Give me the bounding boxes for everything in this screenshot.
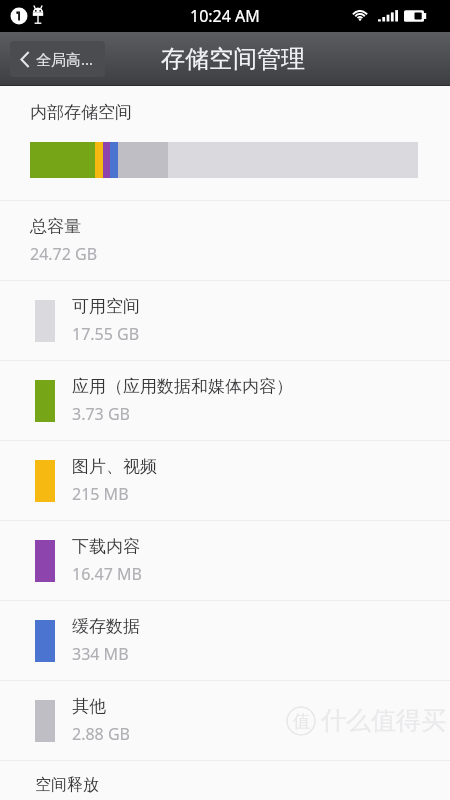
button[interactable]: 可用空间 bbox=[0, 281, 450, 360]
staticText: 图片、视频 bbox=[72, 456, 157, 477]
staticText: 334 MB bbox=[72, 643, 129, 665]
staticText: 应用（应用数据和媒体内容） bbox=[72, 376, 293, 397]
staticText: 10:24 AM bbox=[190, 5, 260, 27]
button[interactable]: 图片、视频 bbox=[0, 441, 450, 520]
staticText: 存储空间管理 bbox=[161, 44, 305, 74]
staticText: 可用空间 bbox=[72, 296, 140, 317]
staticText: 16.47 MB bbox=[72, 563, 142, 585]
staticText: 17.55 GB bbox=[72, 323, 140, 345]
staticText: 值 bbox=[293, 711, 310, 732]
button[interactable]: 其他 bbox=[0, 681, 450, 760]
button[interactable]: 下载内容 bbox=[0, 521, 450, 600]
button[interactable]: 应用（应用数据和媒体内容） bbox=[0, 361, 450, 440]
button[interactable]: 全局高... bbox=[10, 41, 105, 77]
staticText: 空间释放 bbox=[35, 775, 99, 795]
button[interactable]: 空间释放 bbox=[0, 761, 450, 800]
staticText: 3.73 GB bbox=[72, 403, 130, 425]
staticText: 其他 bbox=[72, 696, 106, 717]
staticText: 2.88 GB bbox=[72, 723, 130, 745]
staticText: 内部存储空间 bbox=[30, 102, 132, 123]
staticText: 215 MB bbox=[72, 483, 129, 505]
staticText: 什么值得买 bbox=[321, 705, 446, 736]
staticText: 下载内容 bbox=[72, 536, 140, 557]
button[interactable]: 总容量 bbox=[0, 201, 450, 280]
staticText: 24.72 GB bbox=[30, 243, 98, 265]
staticText: 全局高... bbox=[36, 49, 94, 69]
button[interactable]: 缓存数据 bbox=[0, 601, 450, 680]
staticText: 总容量 bbox=[30, 216, 81, 237]
staticText: 缓存数据 bbox=[72, 616, 140, 637]
